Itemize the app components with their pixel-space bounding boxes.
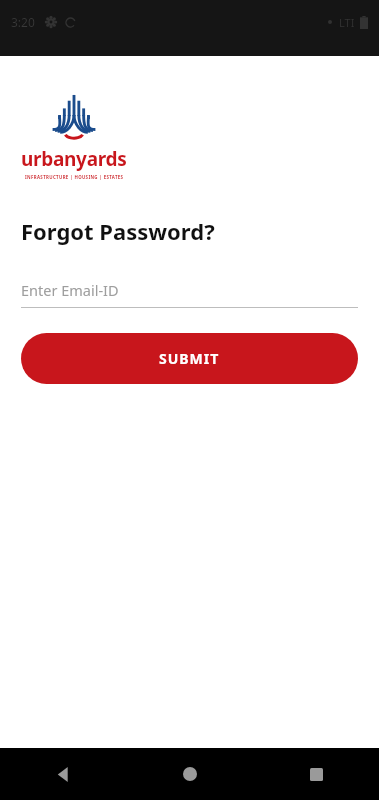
staticText: SUBMIT bbox=[159, 349, 220, 368]
staticText: Forgot Password? bbox=[21, 216, 215, 246]
button[interactable]: Enter Email-ID bbox=[21, 278, 358, 308]
button[interactable]: Home bbox=[166, 750, 214, 798]
button[interactable]: Recent apps bbox=[292, 750, 340, 798]
staticText: INFRASTRUCTURE | HOUSING | ESTATES bbox=[25, 174, 124, 180]
staticText: urbanyards bbox=[21, 146, 127, 172]
button[interactable]: SUBMIT bbox=[21, 333, 358, 384]
staticText: Enter Email-ID bbox=[21, 280, 119, 300]
staticText: 3:20 bbox=[11, 14, 35, 30]
button[interactable]: Back bbox=[39, 750, 87, 798]
staticText: LTI bbox=[339, 15, 355, 30]
